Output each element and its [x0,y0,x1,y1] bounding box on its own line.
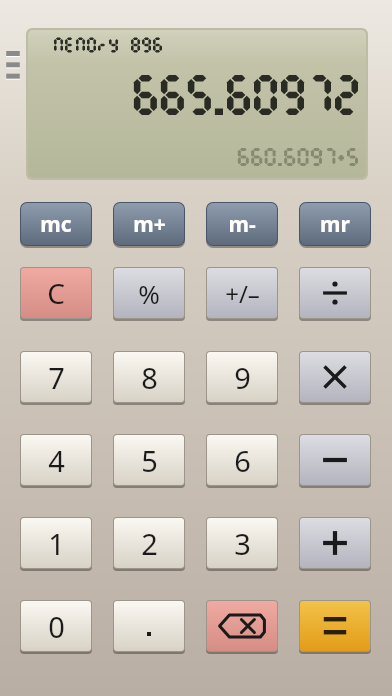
button[interactable]: Equals [299,600,371,652]
staticText: 5 [141,441,158,480]
staticText: 2 [141,524,158,563]
staticText: % [138,276,160,311]
staticText: 0 [48,607,65,646]
button[interactable]: 7 [20,351,92,403]
button[interactable]: Backspace [206,600,278,652]
button[interactable]: 3 [206,517,278,569]
button[interactable]: mc [20,202,92,246]
button[interactable]: 4 [20,434,92,486]
staticText: 3 [234,524,251,563]
staticText: 6 [234,441,251,480]
staticText: 4 [48,441,65,480]
button[interactable]: 9 [206,351,278,403]
button[interactable]: Minus [299,434,371,486]
staticText: m+ [133,210,166,239]
button[interactable]: Divide [299,267,371,319]
staticText: 9 [234,358,251,397]
button[interactable]: 2 [113,517,185,569]
button[interactable]: mr [299,202,371,246]
button[interactable]: Multiply [299,351,371,403]
button[interactable]: 5 [113,434,185,486]
button[interactable]: Plus [299,517,371,569]
button[interactable]: C [20,267,92,319]
button[interactable]: 8 [113,351,185,403]
staticText: +/– [225,277,260,310]
button[interactable]: 0 [20,600,92,652]
staticText: mc [40,210,72,239]
staticText: mr [320,210,350,239]
staticText: m- [228,210,256,239]
staticText: 8 [141,358,158,397]
button[interactable]: m+ [113,202,185,246]
button[interactable]: Decimal point [113,600,185,652]
button[interactable]: % [113,267,185,319]
staticText: 7 [48,358,65,397]
staticText: 1 [48,524,65,563]
button[interactable]: 6 [206,434,278,486]
button[interactable]: m- [206,202,278,246]
button[interactable]: 1 [20,517,92,569]
button[interactable]: Menu [2,48,24,82]
staticText: C [47,274,65,312]
button[interactable]: +/– [206,267,278,319]
